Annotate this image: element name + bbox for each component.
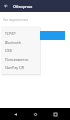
staticText: USB: [5, 48, 12, 53]
staticText: Обзорная: [13, 4, 33, 9]
staticText: TCP/IP: [5, 31, 16, 36]
staticText: Тип подключения: [3, 18, 29, 22]
staticText: SberPay QR: [5, 65, 24, 70]
button[interactable]: Bluetooth: [1, 38, 40, 47]
staticText: Пользователь: [5, 57, 29, 62]
button[interactable]: Пользователь: [1, 55, 40, 64]
button[interactable]: Back: [10, 109, 20, 119]
staticText: Bluetooth: [5, 40, 21, 45]
button[interactable]: TCP/IP: [1, 29, 40, 38]
button[interactable]: USB: [1, 46, 40, 55]
button[interactable]: Recents: [50, 109, 60, 119]
button[interactable]: SberPay QR: [1, 63, 40, 72]
button[interactable]: Back: [0, 0, 11, 12]
button[interactable]: Home: [30, 109, 40, 119]
